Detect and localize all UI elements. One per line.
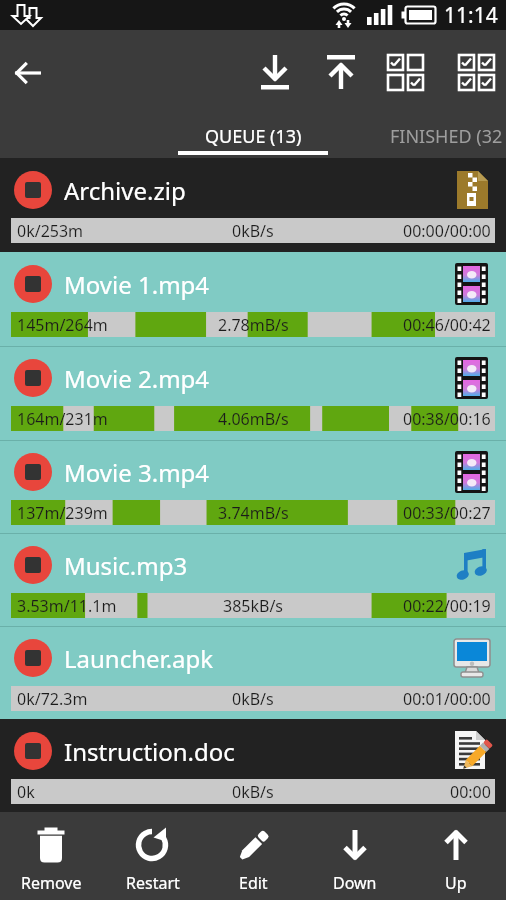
staticText: 0k/72.3m [17, 688, 88, 710]
staticText: 00:22/00:19 [403, 595, 491, 617]
staticText: 2.78mB/s [218, 314, 289, 336]
staticText: 11:14 [444, 1, 498, 30]
staticText: 00:38/00:16 [403, 408, 491, 430]
button[interactable] [381, 30, 429, 115]
button[interactable] [251, 30, 299, 115]
staticText: 145m/264m [17, 314, 108, 336]
staticText: Movie 2.mp4 [64, 362, 210, 395]
staticText: 3.74mB/s [218, 502, 289, 524]
staticText: Launcher.apk [64, 642, 214, 675]
button[interactable] [14, 265, 52, 303]
button[interactable]: QUEUE (13) [205, 124, 302, 149]
button[interactable]: Archive.zip [0, 158, 506, 252]
staticText: QUEUE (13) [205, 124, 302, 149]
staticText: 0k/253m [17, 220, 84, 242]
staticText: 0kB/s [232, 781, 274, 803]
button[interactable] [14, 639, 52, 677]
button[interactable]: Movie 3.mp4 [0, 440, 506, 533]
button[interactable]: Down [304, 812, 405, 900]
staticText: 00:33/00:27 [403, 502, 491, 524]
staticText: Restart [126, 872, 180, 894]
button[interactable]: Remove [0, 812, 102, 900]
staticText: Movie 3.mp4 [64, 456, 210, 489]
staticText: Movie 1.mp4 [64, 268, 210, 301]
staticText: Edit [239, 872, 268, 894]
staticText: Archive.zip [64, 174, 186, 207]
staticText: Down [333, 872, 377, 894]
staticText: 0k [17, 781, 35, 803]
button[interactable] [0, 30, 56, 115]
staticText: Remove [21, 872, 82, 894]
staticText: 137m/239m [17, 502, 108, 524]
staticText: 00:00/00:00 [403, 220, 491, 242]
button[interactable]: Music.mp3 [0, 533, 506, 626]
button[interactable] [14, 453, 52, 491]
button[interactable]: Up [405, 812, 506, 900]
button[interactable]: Edit [203, 812, 304, 900]
button[interactable] [14, 359, 52, 397]
button[interactable]: Restart [102, 812, 203, 900]
button[interactable] [452, 30, 500, 115]
button[interactable] [14, 546, 52, 584]
button[interactable]: FINISHED (32 [390, 124, 503, 149]
button[interactable]: Movie 1.mp4 [0, 252, 506, 346]
button[interactable] [317, 30, 365, 115]
button[interactable] [14, 732, 52, 770]
button[interactable]: Movie 2.mp4 [0, 346, 506, 440]
staticText: 385kB/s [223, 595, 284, 617]
button[interactable]: Launcher.apk [0, 626, 506, 719]
staticText: 3.53m/11.1m [17, 595, 117, 617]
staticText: 0kB/s [232, 688, 274, 710]
staticText: 00:00 [450, 781, 491, 803]
staticText: 4.06mB/s [218, 408, 289, 430]
staticText: 164m/231m [17, 408, 108, 430]
staticText: Up [445, 872, 467, 894]
button[interactable] [14, 171, 52, 209]
staticText: 00:46/00:42 [403, 314, 491, 336]
button[interactable]: Instruction.doc [0, 719, 506, 812]
staticText: 0kB/s [232, 220, 274, 242]
staticText: Instruction.doc [64, 735, 235, 768]
staticText: 00:01/00:00 [403, 688, 491, 710]
staticText: Music.mp3 [64, 549, 188, 582]
